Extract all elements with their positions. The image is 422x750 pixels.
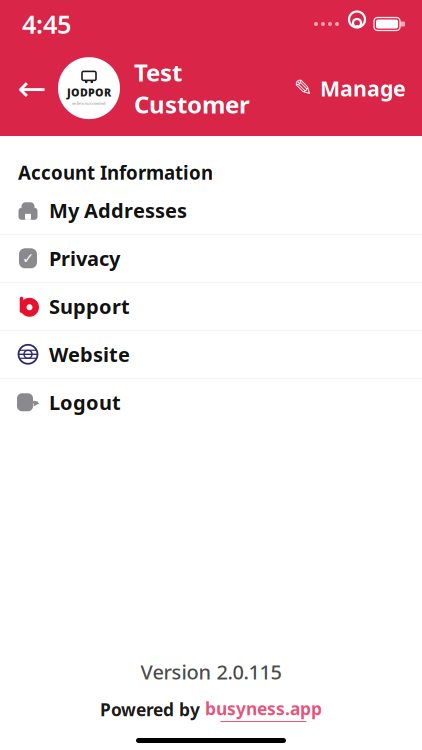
button[interactable]: Support (0, 283, 422, 330)
staticText: Website (49, 341, 130, 368)
staticText: JODPOR (67, 85, 111, 100)
button[interactable]: My Addresses (0, 187, 422, 234)
button[interactable]: Website (0, 331, 422, 378)
staticText: Account Information (18, 160, 213, 185)
button[interactable]: ▸ (0, 379, 422, 426)
staticText: busyness.app (205, 697, 322, 720)
staticText: ✎ (294, 75, 313, 101)
staticText: ✓ (22, 250, 34, 267)
staticText: Support (49, 293, 130, 320)
button[interactable]: Powered by (96, 695, 326, 724)
staticText: ▸ (33, 395, 39, 409)
staticText: Logout (49, 389, 121, 416)
button[interactable]: ✎ (288, 66, 412, 110)
staticText: online succeeded (72, 101, 106, 106)
staticText: ← (17, 68, 46, 108)
button[interactable]: Back (10, 66, 54, 110)
staticText: Manage (320, 74, 406, 102)
button[interactable]: ✓ (0, 235, 422, 282)
staticText: Version 2.0.115 (140, 658, 281, 685)
staticText: Powered by (100, 698, 200, 721)
staticText: Test Customer (134, 56, 250, 120)
staticText: My Addresses (49, 197, 187, 224)
staticText: Privacy (49, 245, 120, 272)
staticText: 4:45 (22, 7, 71, 41)
